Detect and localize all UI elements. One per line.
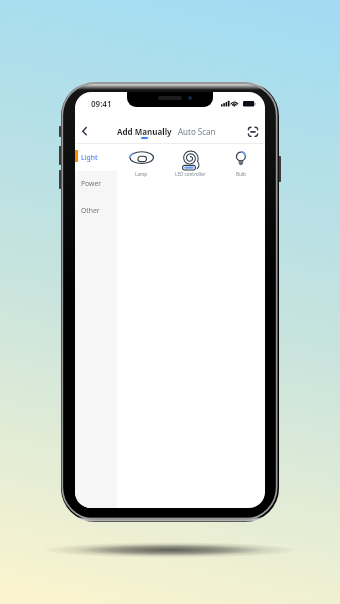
staticText: 09:41 [91,98,112,109]
button[interactable]: Add Manually [114,124,174,138]
staticText: LED controller [175,171,206,177]
button[interactable]: Light [75,144,117,171]
button[interactable] [227,145,255,179]
button[interactable]: Other [75,197,117,224]
staticText: Lamp [135,171,148,177]
button[interactable] [77,123,93,139]
staticText: Add Manually [117,126,172,137]
button[interactable] [173,145,207,179]
staticText: Power [81,179,102,188]
staticText: Auto Scan [178,126,216,137]
button[interactable]: Auto Scan [175,124,219,138]
staticText: Bulb [236,171,246,177]
button[interactable] [245,124,261,140]
staticText: Light [81,153,98,162]
button[interactable] [125,147,159,181]
staticText: Other [81,206,100,215]
button[interactable]: Power [75,170,117,197]
